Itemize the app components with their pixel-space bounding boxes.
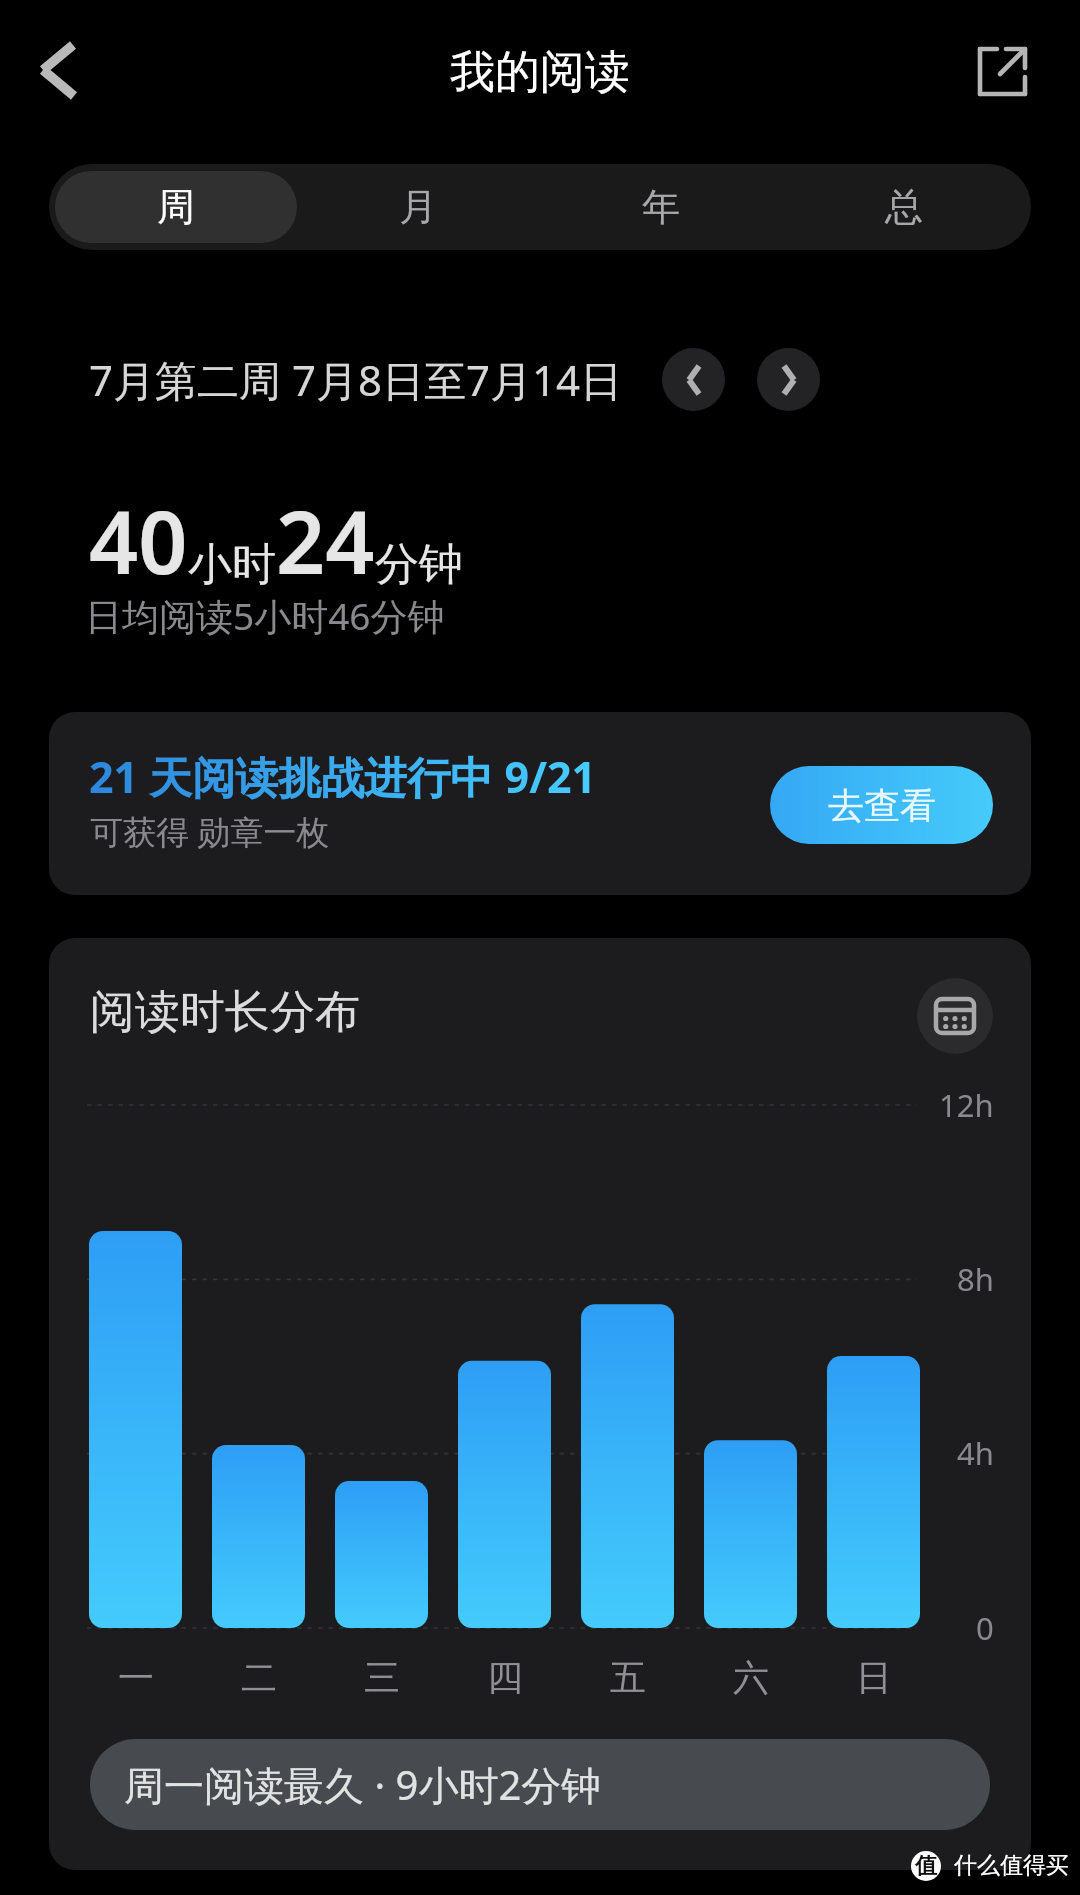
staticText: 小时 — [188, 537, 276, 592]
staticText: 分钟 — [375, 537, 463, 592]
staticText: 月 — [399, 183, 437, 231]
staticText: 40 — [89, 482, 188, 599]
button[interactable]: 去查看 — [770, 766, 993, 844]
staticText: 三 — [364, 1655, 400, 1700]
staticText: 去查看 — [828, 783, 936, 828]
button[interactable]: 年 — [539, 171, 782, 243]
button[interactable]: Back — [18, 26, 110, 118]
staticText: 什么值得买 — [954, 1851, 1069, 1880]
staticText: 我的阅读 — [450, 44, 630, 101]
staticText: 8h — [957, 1258, 994, 1300]
staticText: 阅读时长分布 — [90, 984, 360, 1041]
staticText: 日 — [856, 1655, 892, 1700]
button[interactable]: 21 天阅读挑战进行中 9/21 — [49, 712, 1031, 895]
staticText: 可获得 勋章一枚 — [90, 809, 330, 854]
staticText: 四 — [487, 1655, 523, 1700]
staticText: 年 — [642, 183, 680, 231]
staticText: 总 — [885, 183, 923, 231]
button[interactable]: Previous week — [662, 348, 725, 411]
button[interactable]: Next week — [757, 348, 820, 411]
staticText: 一 — [118, 1655, 154, 1700]
staticText: 0 — [976, 1607, 994, 1649]
staticText: 周 — [157, 183, 195, 231]
staticText: 21 天阅读挑战进行中 9/21 — [89, 747, 597, 806]
button[interactable]: Share — [954, 23, 1049, 118]
staticText: 值 — [915, 1852, 937, 1880]
staticText: 周一阅读最久 · 9小时2分钟 — [124, 1757, 602, 1812]
staticText: 7月第二周 7月8日至7月14日 — [89, 351, 623, 408]
button[interactable]: 周 — [55, 171, 297, 243]
staticText: 二 — [241, 1655, 277, 1700]
staticText: 日均阅读5小时46分钟 — [85, 590, 445, 641]
button[interactable]: 总 — [782, 171, 1025, 243]
button[interactable]: Calendar — [917, 978, 993, 1054]
staticText: 五 — [610, 1655, 646, 1700]
staticText: 4h — [957, 1432, 994, 1474]
button[interactable]: 月 — [297, 171, 539, 243]
staticText: 24 — [276, 482, 375, 599]
staticText: 12h — [939, 1084, 994, 1126]
staticText: 六 — [733, 1655, 769, 1700]
